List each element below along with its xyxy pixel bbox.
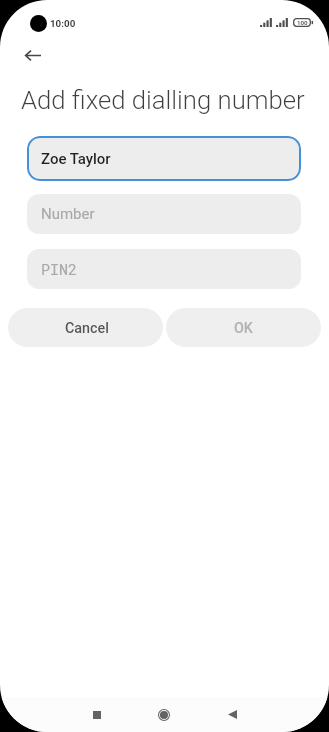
button[interactable]: PIN2	[27, 249, 301, 289]
staticText: Zoe Taylor	[41, 150, 111, 168]
staticText: PIN2	[41, 259, 78, 279]
button[interactable]: Back	[212, 697, 252, 732]
button[interactable]: OK	[166, 308, 321, 347]
staticText: Number	[41, 205, 95, 223]
staticText: 10:00	[50, 18, 76, 29]
button[interactable]: Back	[12, 34, 54, 76]
staticText: Add fixed dialling number	[21, 85, 305, 115]
button[interactable]: Cancel	[8, 308, 163, 347]
button[interactable]: Zoe Taylor	[27, 136, 301, 181]
button[interactable]: Number	[27, 194, 301, 234]
button[interactable]: Home	[144, 697, 184, 732]
button[interactable]: Recent apps	[77, 697, 117, 732]
staticText: Cancel	[65, 320, 109, 337]
staticText: 100	[297, 19, 308, 26]
staticText: OK	[234, 320, 253, 337]
